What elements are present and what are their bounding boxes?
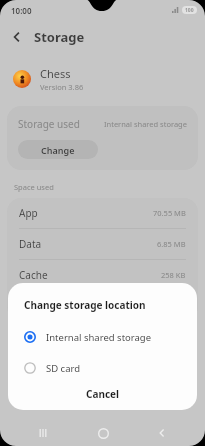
button[interactable]: Data xyxy=(7,229,198,259)
staticText: SD card xyxy=(46,362,81,375)
staticText: Cancel xyxy=(86,387,120,401)
staticText: Change xyxy=(41,144,75,156)
staticText: 6.85 MB xyxy=(157,239,186,249)
button[interactable]: Cache xyxy=(7,260,198,290)
button[interactable]: Total xyxy=(7,291,198,321)
staticText: 70.55 MB xyxy=(153,208,186,218)
button[interactable]: Change xyxy=(18,140,98,159)
staticText: 100 xyxy=(185,7,194,14)
button[interactable]: App xyxy=(7,198,198,228)
staticText: Data xyxy=(19,237,42,251)
staticText: Chess xyxy=(40,66,71,81)
button[interactable]: Recents xyxy=(26,420,60,446)
button[interactable]: Back xyxy=(0,20,34,54)
staticText: Internal shared storage xyxy=(104,119,187,129)
staticText: Version 3.86 xyxy=(40,82,84,92)
staticText: Space used xyxy=(14,182,54,192)
staticText: Storage xyxy=(34,28,85,46)
staticText: 10:00 xyxy=(11,5,32,16)
staticText: App xyxy=(19,206,38,220)
button[interactable]: Cancel xyxy=(8,379,197,409)
button[interactable]: Internal shared storage xyxy=(8,326,197,348)
staticText: 258 KB xyxy=(161,270,186,280)
staticText: Cache xyxy=(19,268,48,282)
button[interactable]: Chess xyxy=(13,66,192,92)
button[interactable]: Home xyxy=(86,420,120,446)
staticText: Storage used xyxy=(18,117,80,131)
button[interactable]: SD card xyxy=(8,357,197,379)
button[interactable]: Back xyxy=(145,420,179,446)
staticText: Change storage location xyxy=(24,298,146,312)
staticText: Internal shared storage xyxy=(46,331,152,344)
staticText: Total xyxy=(19,299,42,313)
